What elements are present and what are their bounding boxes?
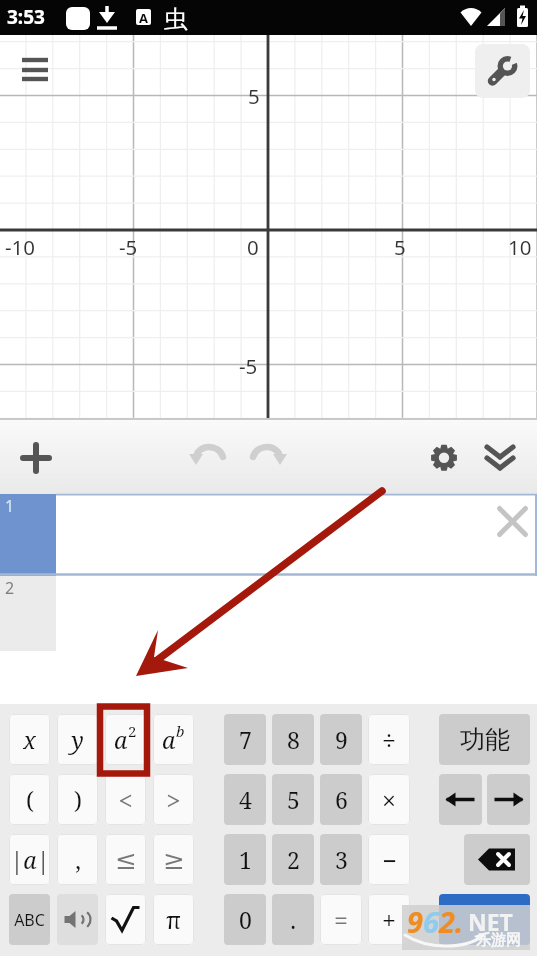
button[interactable]: ÷	[368, 714, 410, 765]
button[interactable]	[57, 894, 98, 945]
button[interactable]: 3	[320, 834, 362, 885]
staticText: 5	[248, 82, 260, 110]
button[interactable]: +	[368, 894, 410, 945]
staticText: )	[74, 784, 82, 815]
staticText: |a|	[10, 844, 50, 875]
staticText: .	[290, 904, 296, 935]
button[interactable]: 1	[0, 494, 537, 576]
button[interactable]: >	[153, 774, 194, 825]
staticText: ≥	[163, 845, 185, 875]
staticText: x	[23, 724, 36, 755]
button[interactable]: Move left	[439, 774, 482, 825]
staticText: 2	[287, 844, 300, 875]
staticText: 5	[394, 233, 406, 261]
staticText: 4	[239, 784, 252, 815]
button[interactable]: .	[272, 894, 314, 945]
staticText: 10	[508, 233, 532, 261]
button[interactable]: )	[57, 774, 98, 825]
staticText: =	[334, 903, 348, 937]
staticText: 8	[287, 724, 300, 755]
staticText: <	[118, 782, 133, 817]
staticText: 2	[5, 577, 15, 599]
button[interactable]: 0	[224, 894, 266, 945]
staticText: NET	[468, 906, 513, 937]
button[interactable]: Settings	[422, 434, 466, 478]
button[interactable]: 功能	[439, 714, 530, 765]
staticText: +	[382, 903, 396, 937]
button[interactable]: y	[57, 714, 98, 765]
button[interactable]: (	[9, 774, 50, 825]
staticText: 5	[287, 784, 300, 815]
button[interactable]: Menu	[13, 48, 57, 92]
staticText: 1	[239, 844, 252, 875]
staticText: -10	[5, 233, 36, 261]
staticText: 1	[5, 495, 15, 517]
staticText: 2.	[439, 902, 464, 941]
staticText: ÷	[382, 723, 396, 757]
staticText: -5	[239, 352, 258, 380]
staticText: ×	[382, 783, 396, 817]
button[interactable]: 1	[224, 834, 266, 885]
button[interactable]	[105, 894, 146, 945]
button[interactable]: Enter	[439, 894, 530, 945]
button[interactable]: ABC	[9, 894, 50, 945]
staticText: 0	[247, 233, 259, 261]
button[interactable]: 9	[320, 714, 362, 765]
staticText: y	[71, 724, 84, 755]
staticText: ABC	[14, 909, 45, 931]
button[interactable]: 5	[272, 774, 314, 825]
staticText: 3:53	[7, 4, 45, 30]
button[interactable]: 7	[224, 714, 266, 765]
button[interactable]: x	[9, 714, 50, 765]
button[interactable]: 2	[272, 834, 314, 885]
staticText: b	[176, 721, 185, 741]
button[interactable]: a	[153, 714, 194, 765]
button[interactable]: Backspace	[464, 834, 530, 885]
button[interactable]: Add expression	[12, 434, 60, 482]
staticText: ≤	[115, 845, 137, 875]
staticText: π	[166, 904, 181, 935]
staticText: 7	[239, 724, 252, 755]
button[interactable]: Collapse keypad	[478, 434, 522, 478]
staticText: −	[382, 843, 397, 877]
staticText: A	[139, 9, 148, 27]
button[interactable]: |a|	[9, 834, 50, 885]
staticText: a	[114, 724, 128, 755]
button[interactable]: π	[153, 894, 194, 945]
button[interactable]: ≥	[153, 834, 194, 885]
staticText: 乐游网	[476, 931, 521, 950]
staticText: 虫	[164, 4, 188, 34]
button[interactable]: ,	[57, 834, 98, 885]
button[interactable]: 4	[224, 774, 266, 825]
button[interactable]: =	[320, 894, 362, 945]
button[interactable]: Move right	[487, 774, 530, 825]
staticText: 9	[407, 902, 423, 941]
staticText: 2	[128, 721, 137, 741]
staticText: 功能	[460, 724, 510, 755]
button[interactable]: 8	[272, 714, 314, 765]
staticText: -5	[119, 233, 138, 261]
staticText: >	[166, 782, 181, 817]
staticText: 0	[239, 904, 252, 935]
staticText: 3	[335, 844, 348, 875]
button[interactable]: Undo	[187, 434, 231, 478]
button[interactable]: 2	[0, 576, 537, 651]
button[interactable]: 6	[320, 774, 362, 825]
button[interactable]: −	[368, 834, 410, 885]
button[interactable]: ×	[368, 774, 410, 825]
staticText: a	[162, 724, 176, 755]
button[interactable]: Graph settings	[475, 44, 530, 98]
staticText: ,	[75, 844, 81, 875]
button[interactable]: Redo	[245, 434, 289, 478]
button[interactable]: ≤	[105, 834, 146, 885]
staticText: 9	[335, 724, 348, 755]
button[interactable]: a	[105, 714, 146, 765]
staticText: (	[26, 784, 34, 815]
button[interactable]: Clear expression	[492, 501, 533, 542]
staticText: 6	[335, 784, 348, 815]
staticText: 6	[423, 902, 439, 941]
button[interactable]: <	[105, 774, 146, 825]
